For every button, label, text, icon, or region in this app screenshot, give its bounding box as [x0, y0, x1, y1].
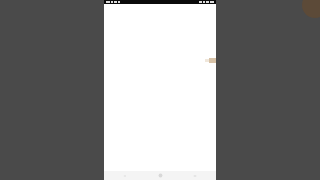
button[interactable]: Home	[146, 171, 174, 180]
